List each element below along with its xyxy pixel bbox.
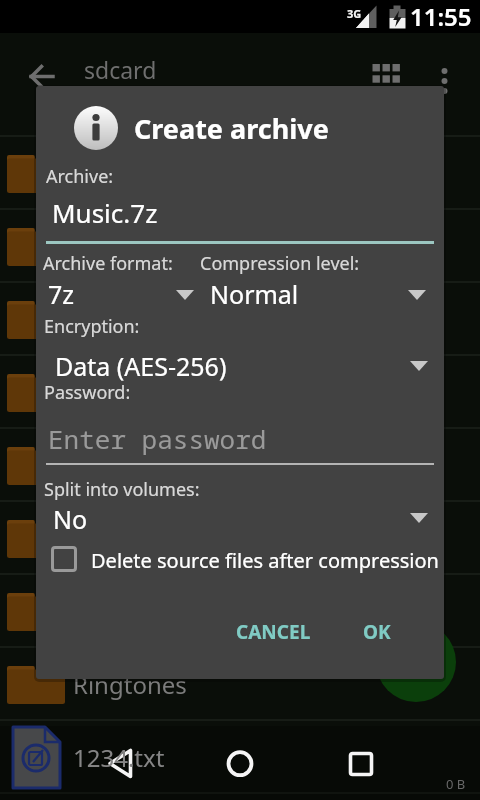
staticText: 11:55 (410, 0, 472, 33)
staticText: Archive format: (43, 251, 173, 276)
staticText: Enter password (48, 421, 267, 456)
button[interactable]: Enter password (48, 414, 267, 462)
button[interactable] (36, 278, 196, 312)
staticText: 0 B (446, 775, 466, 793)
button[interactable] (376, 622, 456, 702)
button[interactable] (18, 54, 62, 98)
button[interactable] (336, 740, 384, 788)
staticText: Normal (210, 277, 299, 311)
button[interactable] (96, 740, 144, 788)
button[interactable] (424, 52, 464, 92)
button[interactable]: CANCEL (216, 610, 331, 654)
staticText: Ringtones (73, 668, 187, 701)
staticText: Data (AES-256) (55, 349, 227, 383)
staticText: sdcard (84, 54, 157, 85)
button[interactable] (46, 538, 436, 580)
button[interactable] (36, 350, 434, 384)
staticText: 3G (347, 6, 362, 21)
staticText: 1234.txt (73, 741, 165, 774)
staticText: Create archive (134, 110, 329, 147)
button[interactable]: Music.7z (52, 188, 158, 236)
button[interactable] (200, 278, 434, 312)
staticText: Delete source files after compression (91, 547, 439, 574)
staticText: Music.7z (52, 195, 158, 230)
staticText: Password: (44, 380, 131, 405)
button[interactable] (36, 504, 434, 538)
staticText: OK (363, 619, 391, 645)
staticText: Encryption: (44, 314, 140, 339)
staticText: Compression level: (200, 251, 360, 276)
button[interactable] (216, 740, 264, 788)
button[interactable] (364, 52, 410, 98)
staticText: No (53, 502, 88, 536)
staticText: Split into volumes: (44, 477, 200, 502)
staticText: Archive: (46, 164, 114, 189)
staticText: CANCEL (236, 619, 311, 645)
button[interactable]: OK (342, 610, 412, 654)
staticText: 7z (48, 277, 75, 311)
